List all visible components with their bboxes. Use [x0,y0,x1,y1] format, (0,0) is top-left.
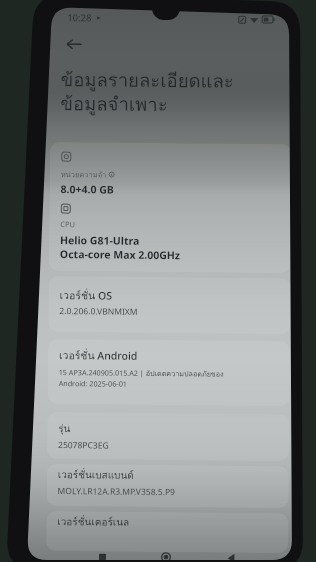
staticText: 10:28 [67,11,92,24]
staticText: รุ่น [58,421,71,437]
staticText: MOLY.LR12A.R3.MP.V358.5.P9 [58,485,176,498]
staticText: 2.0.206.0.VBNMIXM [59,305,138,318]
button[interactable]: เวอร์ชั่น Android [47,339,290,406]
button[interactable]: Recents [89,551,115,561]
staticText: เวอร์ชั่นเบสแบนด์ [58,467,135,484]
button[interactable]: เวอร์ชั่น OS [48,276,291,334]
staticText: เวอร์ชั่น OS [59,287,113,305]
staticText: หน่วยความจำ [61,168,107,180]
button[interactable]: รุ่น [47,412,289,461]
staticText: Helio G81-Ultra [60,233,140,248]
button[interactable]: เวอร์ชั่นเบสแบนด์ [46,464,289,508]
staticText: 15 AP3A.240905.015.A2 | อัปเดตความปลอดภั… [59,367,224,380]
staticText: Android: 2025-06-01 [59,378,128,389]
staticText: CPU [60,219,75,229]
staticText: 25078PC3EG [58,439,109,451]
staticText: เวอร์ชั่น Android [59,347,138,365]
button[interactable]: เวอร์ชั่นเคอร์เนล [46,511,288,553]
button[interactable]: Home [153,552,179,562]
staticText: ข้อมูลรายละเอียดและ ข้อมูลจำเพาะ [60,65,235,120]
staticText: เวอร์ชั่นเคอร์เนล [57,514,129,531]
staticText: Octa-core Max 2.00GHz [60,247,181,262]
button[interactable]: หน่วยความจำ [49,142,292,273]
staticText: 8.0+4.0 GB [60,182,115,197]
button[interactable]: Back [61,31,87,57]
button[interactable]: Back [218,553,244,562]
